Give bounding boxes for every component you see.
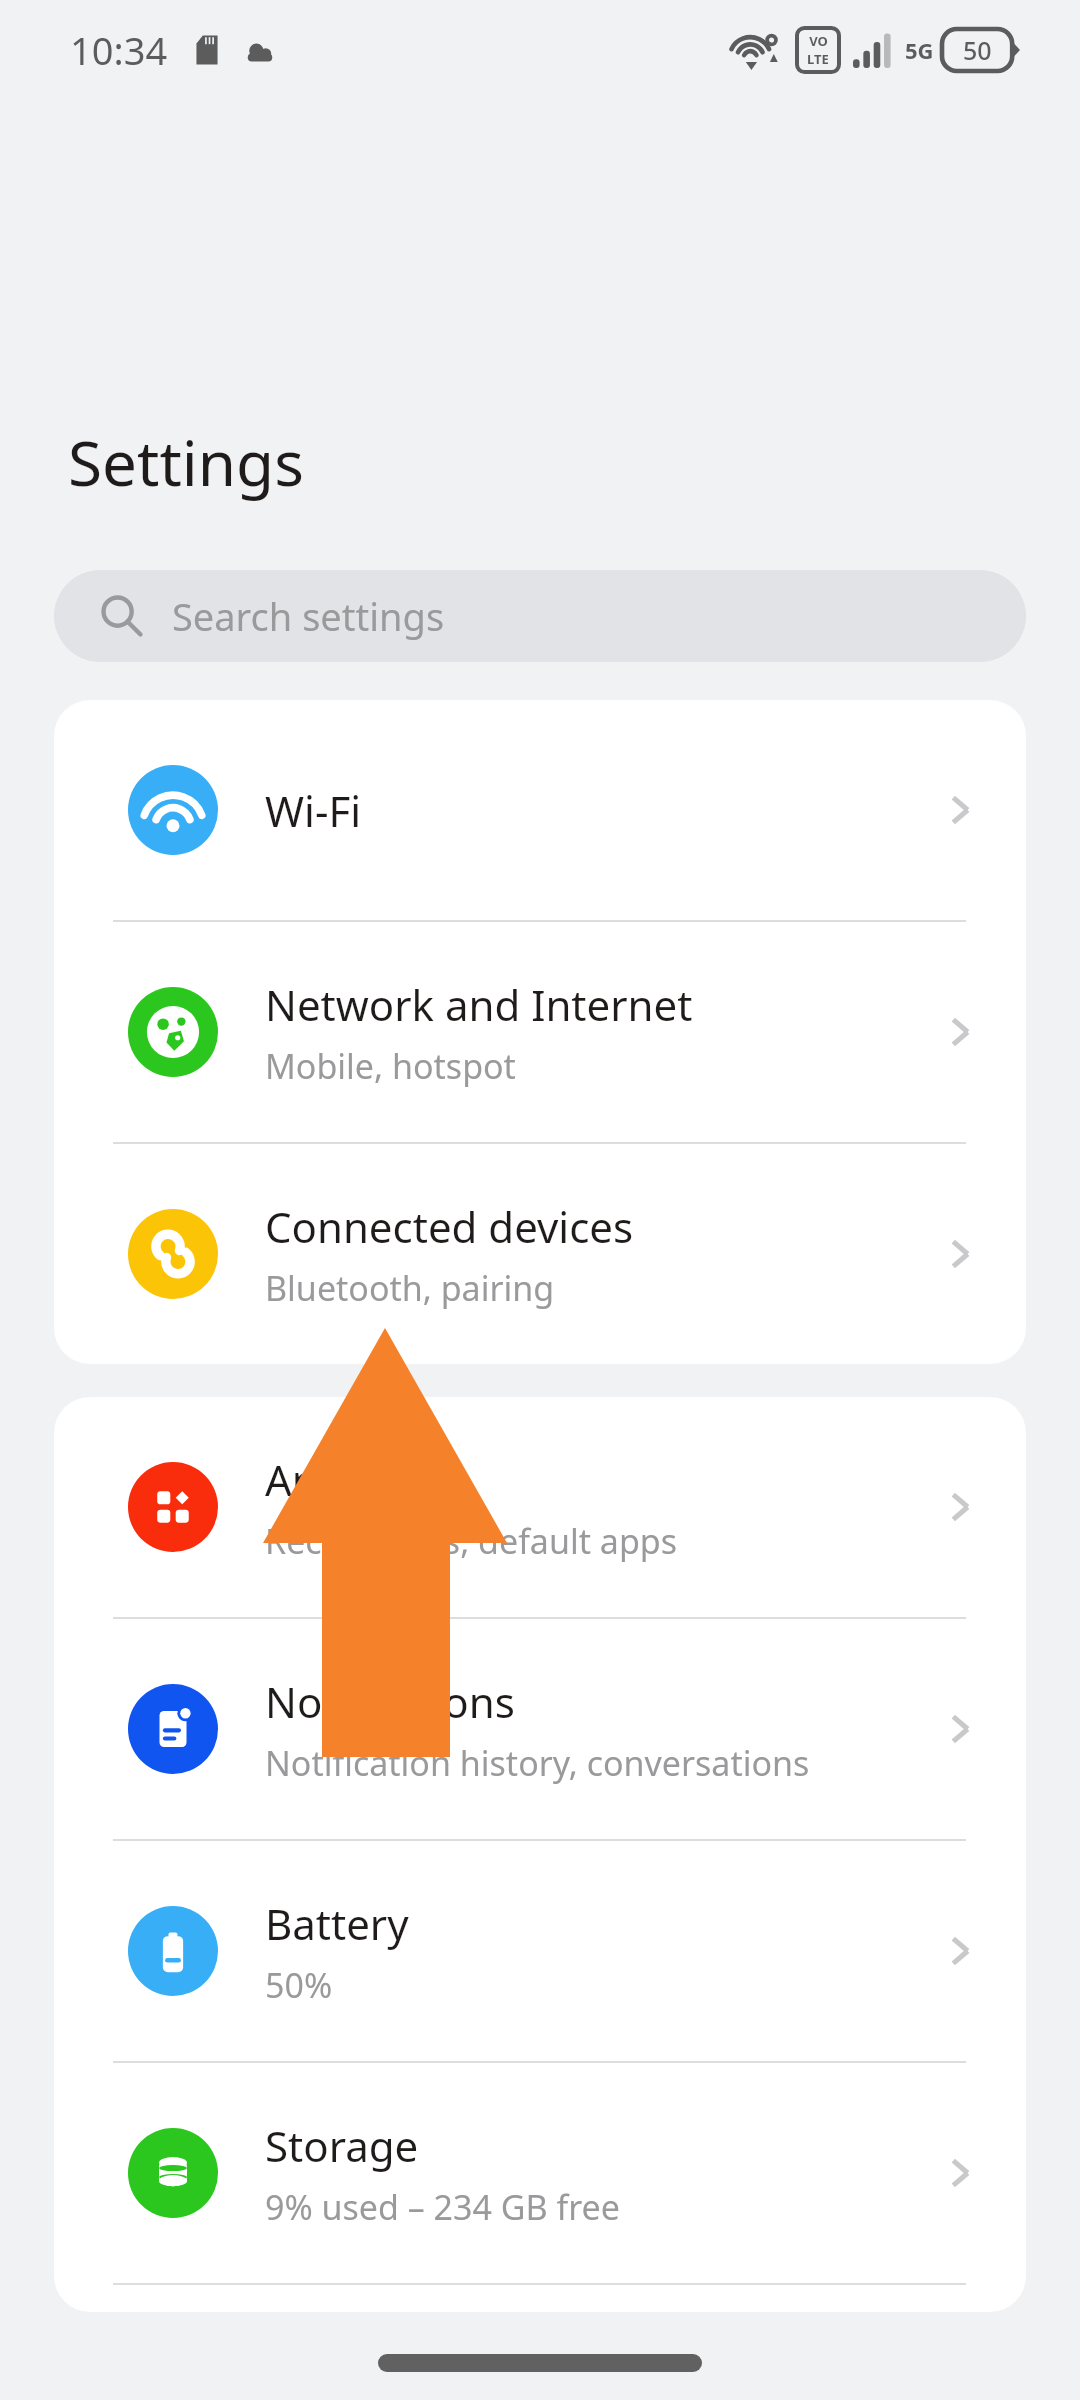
staticText: Wi-Fi [265,782,362,839]
staticText: 9% used – 234 GB free [265,2184,620,2230]
staticText: Settings [68,420,304,504]
staticText: Notification history, conversations [265,1740,810,1786]
staticText: Battery [265,1895,409,1952]
staticText: Mobile, hotspot [265,1043,516,1089]
button[interactable]: Network and Internet [54,922,1026,1142]
staticText: 50 [963,33,992,67]
button[interactable]: Battery [54,1841,1026,2061]
staticText: Apps [265,1451,364,1508]
staticText: Search settings [172,590,445,642]
staticText: Recent apps, default apps [265,1518,678,1564]
button[interactable]: Notifications [54,1619,1026,1839]
button[interactable]: Apps [54,1397,1026,1617]
button[interactable]: Search settings [54,570,1026,662]
button[interactable]: Connected devices [54,1144,1026,1364]
staticText: Storage [265,2117,419,2174]
staticText: VO [809,32,828,50]
staticText: LTE [807,50,829,68]
button[interactable]: Wi-Fi [54,700,1026,920]
staticText: Notifications [265,1673,515,1730]
staticText: Connected devices [265,1198,634,1255]
staticText: 5G [905,35,934,65]
staticText: Bluetooth, pairing [265,1265,555,1311]
staticText: Network and Internet [265,976,693,1033]
button[interactable]: Storage [54,2063,1026,2283]
staticText: 50% [265,1962,333,2008]
staticText: 10:34 [70,24,168,76]
